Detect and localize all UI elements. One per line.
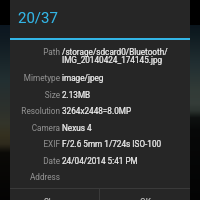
button[interactable]: OK: [100, 189, 190, 200]
staticText: 3264x2448=8.0MP: [62, 106, 132, 116]
staticText: 24/04/2014 5:41 PM: [62, 156, 138, 166]
button[interactable]: Mimetype: [14, 73, 186, 90]
staticText: Share: [44, 197, 65, 200]
staticText: Resolution: [14, 106, 60, 116]
staticText: Mimetype: [14, 73, 60, 83]
button[interactable]: EXIF: [14, 139, 186, 156]
button[interactable]: Size: [14, 90, 186, 107]
button[interactable]: Address: [14, 172, 186, 189]
staticText: 2.13MB: [62, 90, 91, 100]
button[interactable]: Camera: [14, 123, 186, 140]
staticText: Path: [14, 47, 60, 57]
staticText: image/jpeg: [62, 73, 104, 83]
staticText: Nexus 4: [62, 123, 92, 133]
button[interactable]: Resolution: [14, 106, 186, 123]
staticText: OK: [140, 197, 151, 200]
button[interactable]: Date: [14, 156, 186, 173]
staticText: F/2.6 5mm 1/724s ISO-100: [62, 139, 162, 149]
staticText: Size: [14, 90, 60, 100]
staticText: EXIF: [14, 139, 60, 149]
staticText: Camera: [14, 123, 60, 133]
staticText: IMG_20140424_174145.jpg: [62, 55, 163, 65]
staticText: /storage/sdcard0/Bluetooth/: [62, 47, 168, 57]
staticText: Date: [14, 156, 60, 166]
button[interactable]: Path: [14, 47, 186, 65]
staticText: 20/37: [18, 9, 58, 27]
staticText: Address: [14, 172, 60, 182]
button[interactable]: Share: [10, 189, 99, 200]
